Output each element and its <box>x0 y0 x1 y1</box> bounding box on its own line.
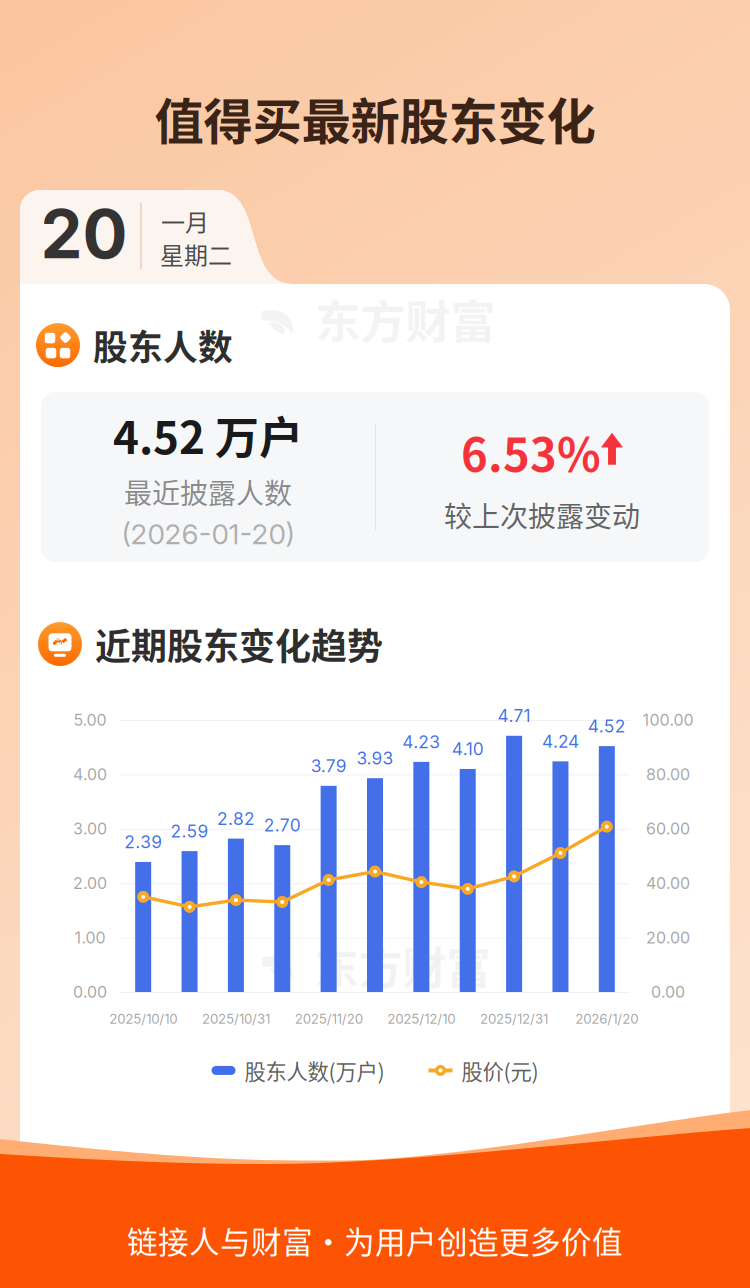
staticText: 链接人与财富·为用户创造更多价值 <box>127 1218 623 1262</box>
staticText: 5.00 <box>73 710 106 730</box>
staticText: 1.00 <box>74 928 105 947</box>
staticText: 一月 <box>161 204 209 238</box>
staticText: 较上次披露变动 <box>444 494 640 535</box>
staticText: 100.00 <box>642 710 693 730</box>
staticText: 2.00 <box>73 873 107 893</box>
staticText: 股东人数(万户) <box>244 1055 384 1086</box>
staticText: 2.59 <box>170 821 208 842</box>
staticText: 2025/11/20 <box>295 1011 363 1027</box>
staticText: 6.53% <box>461 419 601 484</box>
staticText: 近期股东变化趋势 <box>95 618 383 670</box>
staticText: 2.82 <box>217 808 255 829</box>
staticText: 2.39 <box>124 831 162 852</box>
staticText: 4.24 <box>542 731 579 752</box>
staticText: 最近披露人数 <box>124 472 292 512</box>
staticText: 东方财富 <box>314 933 490 997</box>
staticText: 4.23 <box>402 731 440 752</box>
staticText: 20.00 <box>646 928 690 947</box>
staticText: 2.70 <box>264 815 301 836</box>
staticText: 2025/10/10 <box>109 1011 177 1027</box>
staticText: 60.00 <box>646 819 690 838</box>
staticText: 2026/1/20 <box>575 1011 638 1027</box>
staticText: 2025/12/10 <box>387 1011 455 1027</box>
staticText: (2026-01-20) <box>121 517 294 551</box>
staticText: 星期二 <box>160 237 232 271</box>
staticText: 股东人数 <box>93 320 233 370</box>
staticText: 3.00 <box>73 819 107 838</box>
staticText: 4.10 <box>452 738 484 759</box>
staticText: 股价(元) <box>461 1055 538 1086</box>
staticText: 2025/12/31 <box>480 1011 548 1027</box>
staticText: 东方财富 <box>315 286 495 352</box>
staticText: 0.00 <box>73 982 107 1002</box>
staticText: 4.71 <box>498 705 531 726</box>
staticText: 4.52 <box>588 716 626 737</box>
staticText: 2025/10/31 <box>202 1011 270 1027</box>
staticText: 40.00 <box>646 873 690 893</box>
staticText: 3.79 <box>311 755 347 776</box>
staticText: 值得买最新股东变化 <box>154 82 595 154</box>
staticText: 4.52 万户 <box>113 403 303 467</box>
staticText: 20 <box>40 194 127 274</box>
staticText: 3.93 <box>356 748 393 769</box>
staticText: 80.00 <box>646 765 690 784</box>
staticText: 0.00 <box>651 982 685 1002</box>
staticText: 4.00 <box>73 765 107 784</box>
